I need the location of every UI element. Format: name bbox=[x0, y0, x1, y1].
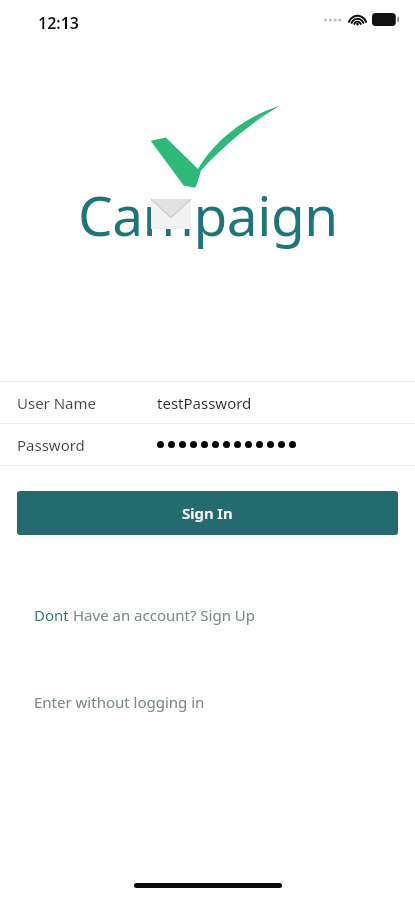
staticText: Sign In bbox=[182, 503, 233, 523]
staticText: User Name bbox=[17, 393, 97, 413]
button[interactable]: Password bbox=[0, 424, 415, 465]
button[interactable]: Sign In bbox=[17, 491, 398, 535]
staticText: Have an account? Sign Up bbox=[73, 605, 256, 625]
staticText: Campaign bbox=[78, 177, 338, 252]
staticText: 12:13 bbox=[38, 12, 80, 34]
staticText: Password bbox=[17, 435, 85, 455]
staticText: Enter without logging in bbox=[34, 692, 205, 712]
button[interactable]: User Name bbox=[0, 382, 415, 423]
staticText: testPassword bbox=[157, 393, 252, 413]
staticText: Dont bbox=[34, 605, 73, 625]
button[interactable]: Dont bbox=[0, 595, 415, 635]
button[interactable]: Enter without logging in bbox=[0, 685, 415, 719]
